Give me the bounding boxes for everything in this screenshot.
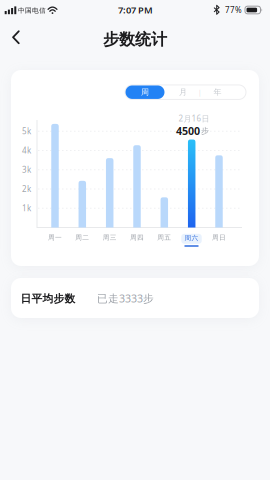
staticText: 日平均步数 [20, 292, 75, 305]
staticText: 3k [22, 164, 31, 175]
staticText: 4k [22, 145, 31, 156]
button[interactable]: 周一 [43, 232, 67, 244]
staticText: 2月16日 [178, 113, 209, 124]
staticText: 周 [141, 87, 149, 97]
staticText: 1k [22, 203, 31, 213]
staticText: 年 [213, 87, 221, 97]
button[interactable]: 周四 [125, 232, 149, 244]
staticText: 4500 [176, 124, 200, 138]
staticText: 2k [22, 184, 31, 194]
staticText: 步 [201, 126, 209, 136]
staticText: 周六 [184, 234, 198, 242]
button[interactable]: 月 [168, 85, 198, 99]
staticText: 5k [22, 126, 31, 136]
button[interactable]: Back [4, 25, 28, 49]
button[interactable]: 周二 [70, 232, 94, 244]
button[interactable]: 周五 [152, 232, 176, 244]
staticText: | [198, 88, 202, 97]
button[interactable]: 周日 [207, 232, 231, 244]
button[interactable]: 周六 [181, 234, 202, 244]
staticText: 步数统计 [103, 30, 167, 49]
staticText: 周二 [75, 233, 89, 242]
staticText: 7:07 PM [118, 4, 153, 16]
staticText: 月 [179, 87, 187, 97]
button[interactable]: 年 [202, 85, 232, 99]
staticText: 77% [225, 5, 242, 15]
button[interactable]: 周 [125, 85, 164, 99]
staticText: 周日 [212, 233, 226, 242]
staticText: 周一 [48, 233, 62, 242]
staticText: 周三 [103, 233, 117, 242]
staticText: 周四 [130, 233, 144, 242]
staticText: 已走3333步 [97, 291, 154, 305]
button[interactable]: 周三 [98, 232, 122, 244]
staticText: 周五 [157, 233, 171, 242]
staticText: 中国电信 [18, 6, 46, 15]
